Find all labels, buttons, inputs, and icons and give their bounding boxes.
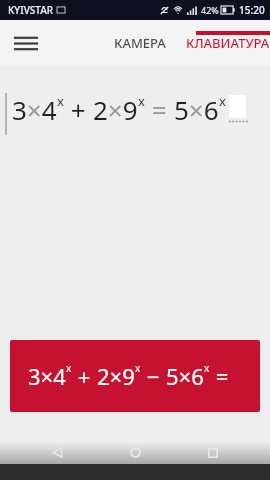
- staticText: 3×4: [28, 361, 66, 391]
- staticText: КЛАВИАТУРА: [186, 34, 270, 52]
- staticText: x: [66, 361, 72, 375]
- staticText: =: [145, 92, 174, 127]
- staticText: KYIVSTAR: [8, 3, 54, 17]
- staticText: x: [138, 92, 145, 110]
- staticText: x: [219, 92, 226, 110]
- staticText: x: [57, 92, 64, 110]
- button[interactable]: Menu: [8, 25, 44, 61]
- staticText: x: [204, 361, 210, 375]
- button[interactable]: Back: [40, 441, 74, 464]
- staticText: 42%: [201, 4, 219, 16]
- button[interactable]: 3×4: [10, 340, 260, 412]
- staticText: 15:20: [239, 3, 265, 17]
- staticText: +: [72, 361, 97, 391]
- button[interactable]: КЛАВИАТУРА: [176, 22, 270, 64]
- staticText: 2×9: [93, 92, 138, 127]
- staticText: =: [210, 361, 229, 391]
- staticText: 5×6: [166, 361, 204, 391]
- staticText: 5×6: [174, 92, 219, 127]
- button[interactable]: Home: [118, 441, 152, 464]
- staticText: x: [135, 361, 141, 375]
- button[interactable]: КАМЕРА: [104, 22, 176, 64]
- staticText: −: [141, 361, 166, 391]
- button[interactable]: Recent apps: [196, 441, 230, 464]
- staticText: 2×9: [97, 361, 135, 391]
- staticText: +: [64, 92, 93, 127]
- staticText: КАМЕРА: [114, 34, 166, 52]
- staticText: 3×4: [12, 92, 57, 127]
